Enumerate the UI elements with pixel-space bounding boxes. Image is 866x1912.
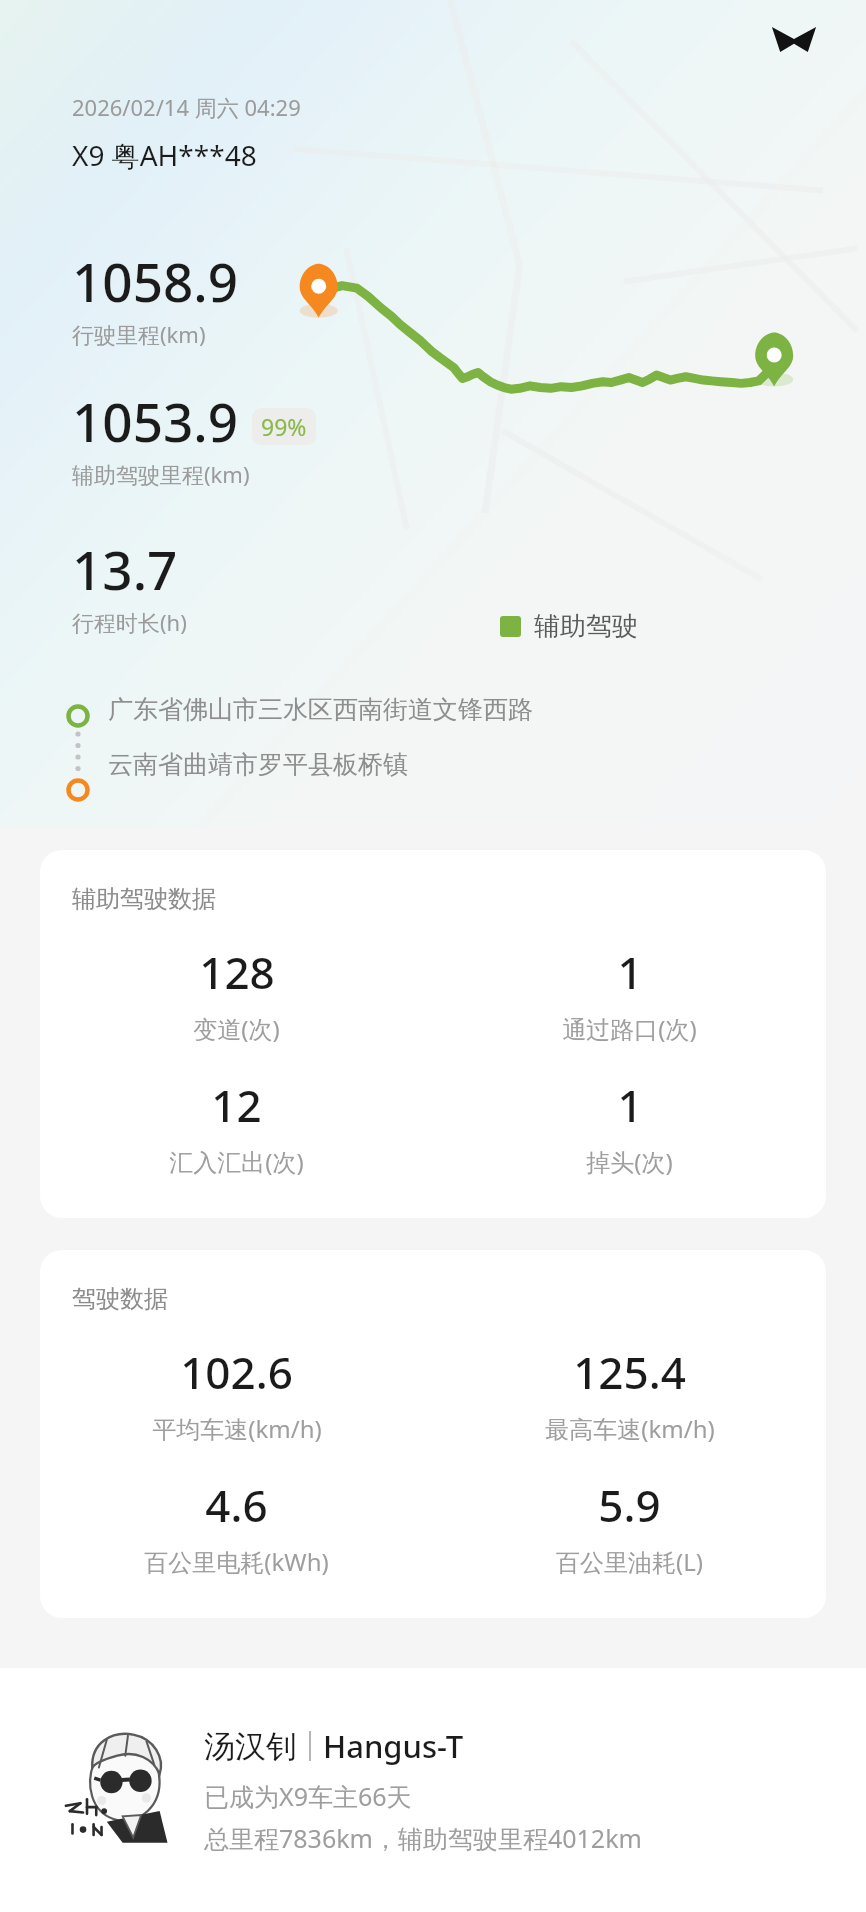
staticText: 1: [617, 942, 643, 1002]
staticText: X9 粤AH***48: [72, 136, 257, 174]
staticText: 辅助驾驶数据: [72, 884, 216, 914]
button[interactable]: Close: [760, 6, 828, 74]
staticText: 汤汉钊: [204, 1727, 297, 1766]
staticText: 1058.9: [72, 245, 238, 317]
staticText: 云南省曲靖市罗平县板桥镇: [108, 749, 408, 780]
button[interactable]: 驾驶数据: [40, 1250, 826, 1618]
staticText: 已成为X9车主66天: [204, 1779, 412, 1813]
staticText: 掉头(次): [586, 1145, 673, 1178]
staticText: 5.9: [598, 1475, 661, 1535]
staticText: 最高车速(km/h): [545, 1412, 715, 1445]
staticText: 辅助驾驶里程(km): [72, 459, 250, 489]
staticText: 变道(次): [193, 1012, 280, 1045]
staticText: Hangus-T: [323, 1725, 464, 1767]
button[interactable]: 辅助驾驶数据: [40, 850, 826, 1218]
staticText: 12: [211, 1075, 262, 1135]
staticText: 99%: [261, 411, 307, 442]
staticText: 广东省佛山市三水区西南街道文锋西路: [108, 694, 533, 725]
staticText: 1: [617, 1075, 643, 1135]
staticText: 102.6: [180, 1342, 293, 1402]
button[interactable]: 汤汉钊: [0, 1668, 866, 1912]
staticText: 13.7: [72, 533, 178, 605]
staticText: 125.4: [573, 1342, 686, 1402]
staticText: 总里程7836km，辅助驾驶里程4012km: [204, 1821, 642, 1855]
staticText: 2026/02/14 周六 04:29: [72, 92, 301, 122]
staticText: 驾驶数据: [72, 1284, 168, 1314]
staticText: 行驶里程(km): [72, 319, 206, 349]
staticText: 4.6: [205, 1475, 268, 1535]
staticText: 通过路口(次): [562, 1012, 697, 1045]
staticText: 平均车速(km/h): [152, 1412, 322, 1445]
staticText: 百公里油耗(L): [556, 1545, 703, 1578]
staticText: 行程时长(h): [72, 607, 187, 637]
staticText: 辅助驾驶: [534, 610, 638, 643]
staticText: 1053.9: [72, 385, 238, 457]
staticText: 百公里电耗(kWh): [144, 1545, 329, 1578]
staticText: 汇入汇出(次): [169, 1145, 304, 1178]
staticText: 128: [199, 942, 275, 1002]
